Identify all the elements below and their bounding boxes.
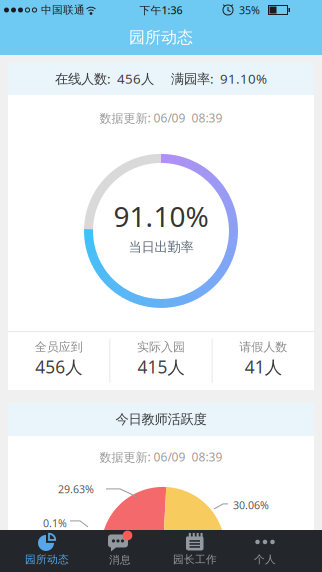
staticText: 今日教师活跃度 xyxy=(115,411,206,428)
staticText: 全员应到 xyxy=(35,340,83,354)
staticText: 456人 xyxy=(35,355,82,378)
button[interactable]: 今日教师活跃度 xyxy=(8,403,314,436)
staticText: 园所动态 xyxy=(129,28,193,47)
staticText: 当日出勤率 xyxy=(128,239,193,255)
staticText: 园长工作 xyxy=(173,553,217,566)
button[interactable]: 园长工作 xyxy=(146,530,244,572)
staticText: 30.06% xyxy=(233,498,269,512)
staticText: 415人 xyxy=(137,355,184,378)
staticText: 29.63% xyxy=(58,482,94,496)
staticText: 实际入园 xyxy=(137,340,185,354)
staticText: 园所动态 xyxy=(25,553,69,566)
staticText: 41人 xyxy=(245,355,282,378)
staticText: 91.10% xyxy=(113,198,208,235)
button[interactable]: 在线人数: 456人 xyxy=(8,62,314,95)
staticText: 满园率: 91.10% xyxy=(171,70,267,87)
button[interactable]: 个人 xyxy=(244,530,286,572)
staticText: 下午1:36 xyxy=(139,3,182,17)
staticText: 35% xyxy=(239,3,260,17)
staticText: 0.1% xyxy=(43,516,67,530)
staticText: 个人 xyxy=(254,553,276,566)
staticText: 在线人数: 456人 xyxy=(55,70,154,87)
staticText: 数据更新: 06/09 08:39 xyxy=(99,449,222,465)
staticText: 请假人数 xyxy=(239,340,287,354)
button[interactable]: 消息 xyxy=(94,530,146,572)
staticText: 中国联通 xyxy=(41,3,85,16)
staticText: 数据更新: 06/09 08:39 xyxy=(99,110,222,126)
button[interactable]: 园所动态 xyxy=(0,530,94,572)
staticText: 消息 xyxy=(109,553,131,566)
